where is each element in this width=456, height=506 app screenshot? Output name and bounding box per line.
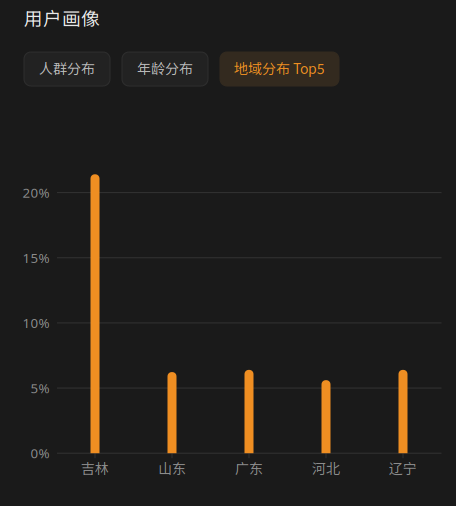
button[interactable]: 地域分布 Top5 xyxy=(220,52,339,86)
staticText: 15% xyxy=(22,249,49,267)
button[interactable]: 人群分布 xyxy=(24,52,110,86)
staticText: 20% xyxy=(22,184,49,201)
button[interactable]: 年龄分布 xyxy=(122,52,208,86)
staticText: 人群分布 xyxy=(39,58,95,78)
staticText: 0% xyxy=(30,444,49,462)
staticText: 吉林 xyxy=(81,458,109,478)
staticText: 10% xyxy=(22,314,49,332)
staticText: 河北 xyxy=(312,458,340,478)
staticText: 年龄分布 xyxy=(137,58,193,78)
staticText: 用户画像 xyxy=(24,4,100,31)
staticText: 山东 xyxy=(158,458,186,478)
staticText: 广东 xyxy=(235,458,263,478)
staticText: 5% xyxy=(30,379,49,397)
staticText: 地域分布 Top5 xyxy=(234,58,325,78)
staticText: 辽宁 xyxy=(389,458,417,478)
